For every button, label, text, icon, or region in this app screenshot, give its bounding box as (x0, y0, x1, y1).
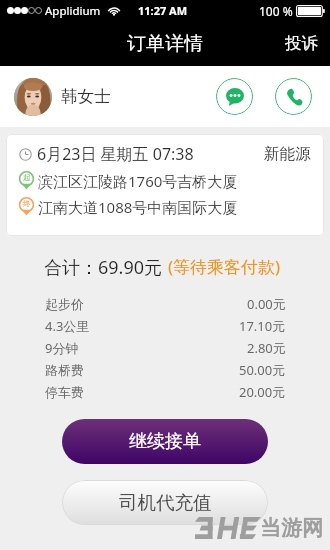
staticText: 6月23日 星期五 07:38 (37, 143, 194, 165)
staticText: 滨江区江陵路1760号吉桥大厦 (38, 171, 238, 191)
staticText: 20.00元 (239, 383, 286, 401)
staticText: 路桥费 (45, 362, 84, 378)
staticText: 合计：69.90元 (44, 255, 163, 279)
staticText: 继续接单 (129, 430, 201, 453)
staticText: 投诉 (285, 33, 318, 54)
staticText: 韩女士 (61, 86, 111, 107)
staticText: 起 (23, 173, 31, 182)
staticText: 9分钟 (45, 339, 79, 357)
staticText: 0.00元 (247, 295, 286, 313)
button[interactable]: Call (275, 78, 312, 115)
staticText: 4.3公里 (45, 317, 90, 335)
staticText: 100 % (259, 3, 293, 19)
button[interactable]: 继续接单 (62, 419, 268, 464)
staticText: 停车费 (45, 384, 84, 400)
staticText: 17.10元 (239, 317, 286, 335)
staticText: 司机代充值 (119, 491, 212, 514)
staticText: 江南大道1088号中南国际大厦 (38, 197, 238, 217)
staticText: 当游网 (260, 515, 323, 541)
button[interactable]: 司机代充值 (62, 480, 268, 525)
staticText: 2.80元 (247, 339, 286, 357)
button[interactable]: Message (216, 78, 253, 115)
staticText: 终 (23, 199, 31, 208)
staticText: 11:27 AM (138, 3, 188, 18)
button[interactable]: 投诉 (271, 23, 330, 64)
staticText: 起步价 (45, 296, 84, 312)
staticText: 50.00元 (239, 361, 286, 379)
staticText: 订单详情 (127, 32, 203, 56)
staticText: Applidium (45, 3, 101, 19)
staticText: 新能源 (264, 144, 311, 164)
staticText: (等待乘客付款) (168, 255, 281, 277)
